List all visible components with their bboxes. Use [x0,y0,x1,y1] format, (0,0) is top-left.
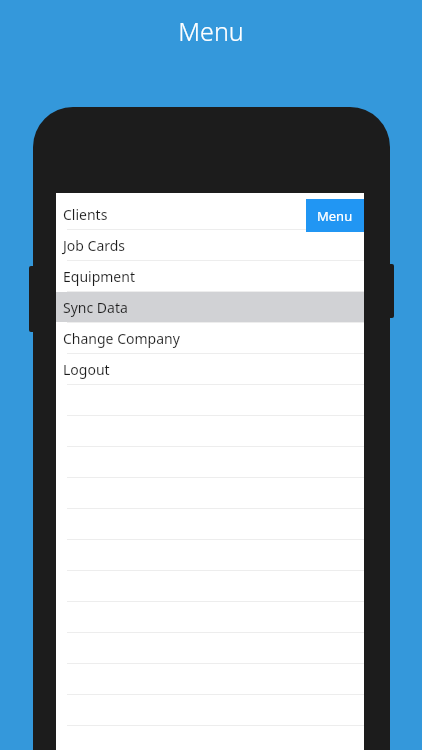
staticText: Sync Data [63,298,128,317]
button[interactable]: Logout [56,354,364,385]
button[interactable]: Job Cards [56,230,364,261]
button[interactable]: Sync Data [56,292,364,323]
button[interactable]: Clients [56,199,364,230]
button[interactable]: Menu [306,199,364,232]
staticText: Change Company [63,329,180,348]
staticText: Equipment [63,267,135,286]
button[interactable]: Change Company [56,323,364,354]
staticText: Menu [317,207,353,225]
staticText: Clients [63,205,108,224]
staticText: Menu [0,14,422,48]
button[interactable]: Equipment [56,261,364,292]
staticText: Job Cards [63,236,126,255]
staticText: Logout [63,360,110,379]
